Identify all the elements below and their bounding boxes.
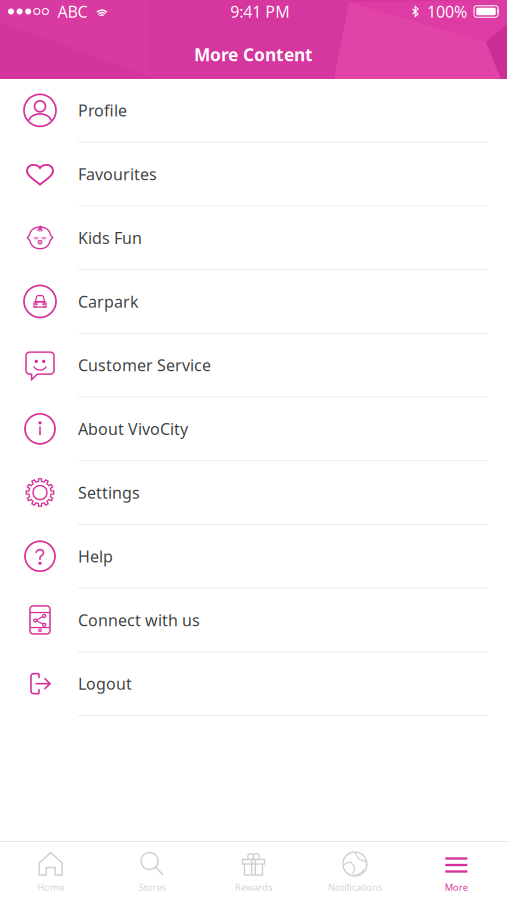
staticText: Kids Fun	[78, 227, 142, 248]
button[interactable]: About VivoCity	[0, 397, 507, 461]
staticText: 9:41 PM	[230, 1, 290, 22]
button[interactable]: Profile	[0, 79, 507, 143]
staticText: Rewards	[235, 881, 272, 893]
button[interactable]: Logout	[0, 652, 507, 716]
staticText: Connect with us	[78, 609, 200, 630]
staticText: 100%	[427, 1, 467, 22]
staticText: Home	[37, 881, 64, 893]
button[interactable]: Carpark	[0, 270, 507, 334]
staticText: Profile	[78, 100, 127, 121]
staticText: ABC	[57, 1, 87, 22]
staticText: About VivoCity	[78, 418, 188, 439]
button[interactable]: Kids Fun	[0, 206, 507, 270]
button[interactable]: Home	[0, 842, 101, 900]
staticText: Logout	[78, 673, 132, 694]
staticText: Help	[78, 546, 113, 567]
button[interactable]: Customer Service	[0, 334, 507, 397]
staticText: Notifications	[328, 881, 382, 893]
staticText: Carpark	[78, 291, 139, 312]
button[interactable]: Stores	[101, 842, 203, 900]
button[interactable]: Help	[0, 525, 507, 589]
staticText: More	[445, 881, 468, 893]
button[interactable]: Notifications	[304, 842, 406, 900]
button[interactable]: Connect with us	[0, 589, 507, 652]
staticText: Customer Service	[78, 354, 211, 376]
staticText: Favourites	[78, 163, 157, 185]
button[interactable]: Favourites	[0, 143, 507, 206]
button[interactable]: More	[406, 842, 507, 900]
button[interactable]: Rewards	[203, 842, 304, 900]
staticText: Stores	[139, 881, 166, 893]
staticText: More Content	[194, 43, 313, 66]
button[interactable]: Settings	[0, 461, 507, 525]
staticText: Settings	[78, 482, 140, 503]
